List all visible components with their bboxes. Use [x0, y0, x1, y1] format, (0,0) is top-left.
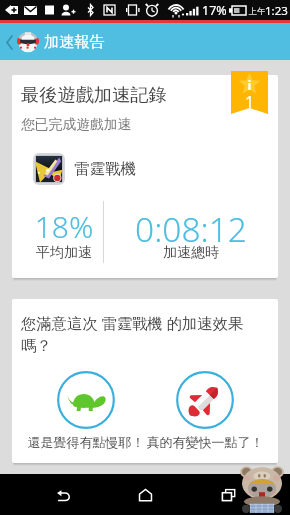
- button[interactable]: Home: [125, 475, 165, 515]
- staticText: 17%: [202, 2, 227, 19]
- button[interactable]: 還是覺得有點慢耶！: [21, 371, 151, 450]
- staticText: 真的有變快一點了！: [140, 434, 270, 450]
- staticText: 加速報告: [44, 32, 105, 51]
- staticText: 雷霆戰機: [74, 159, 136, 179]
- staticText: 您已完成遊戲加速: [21, 116, 132, 133]
- button[interactable]: 真的有變快一點了！: [140, 371, 270, 450]
- staticText: 您滿意這次 雷霆戰機 的加速效果嗎？: [21, 313, 261, 355]
- staticText: 平均加速: [18, 244, 110, 262]
- button[interactable]: Recent apps: [208, 475, 248, 515]
- staticText: 1: [231, 91, 268, 113]
- staticText: 加速總時: [104, 244, 278, 262]
- staticText: 還是覺得有點慢耶！: [21, 434, 151, 450]
- staticText: i: [231, 76, 268, 94]
- staticText: 0:08:12: [104, 206, 278, 252]
- button[interactable]: Back: [43, 475, 83, 515]
- staticText: 18%: [18, 206, 110, 247]
- staticText: 1:23: [265, 3, 288, 19]
- staticText: 最後遊戲加速記錄: [21, 83, 167, 106]
- button[interactable]: Back: [3, 28, 15, 56]
- staticText: 上午: [249, 6, 265, 16]
